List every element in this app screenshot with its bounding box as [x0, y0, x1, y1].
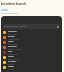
staticText: as you type [1, 16, 12, 19]
staticText: Files [8, 50, 13, 53]
staticText: 2 cards [8, 68, 15, 70]
staticText: Today 4pm [8, 33, 18, 35]
button[interactable]: Music [1, 40, 62, 45]
staticText: Music [8, 40, 14, 43]
button[interactable]: Wallet [1, 65, 62, 70]
staticText: Liked songs [8, 43, 18, 45]
button[interactable]: Calendar [1, 30, 62, 35]
staticText: Calendar [8, 30, 17, 33]
staticText: System [8, 63, 15, 65]
staticText: Downloads [8, 53, 18, 55]
staticText: Wallet [8, 65, 14, 68]
button[interactable]: Contacts [1, 45, 62, 50]
staticText: Notes [8, 55, 14, 58]
staticText: Contacts [8, 45, 17, 48]
button[interactable]: Files [1, 50, 62, 55]
button[interactable]: Photos [1, 35, 62, 40]
staticText: Find anything fast [1, 12, 18, 15]
staticText: Edited today [8, 58, 19, 60]
staticText: Settings [8, 60, 16, 63]
staticText: Recently added [8, 48, 21, 50]
staticText: Intuitive Search [1, 2, 27, 6]
staticText: Search apps, people [7, 25, 26, 28]
button[interactable]: Settings [1, 60, 62, 65]
button[interactable]: Search apps, people [3, 24, 60, 29]
button[interactable]: Notes [1, 55, 62, 60]
staticText: Photos [8, 35, 15, 38]
staticText: 12 new items [8, 38, 20, 40]
